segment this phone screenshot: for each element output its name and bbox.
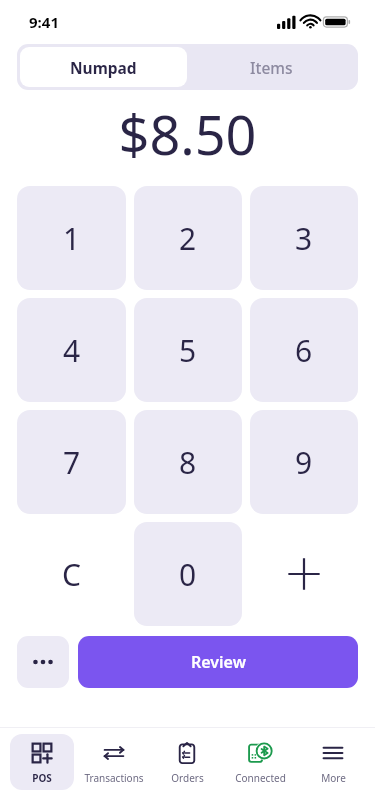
- button[interactable]: Transactions: [82, 734, 146, 790]
- staticText: POS: [32, 771, 52, 785]
- staticText: 7: [63, 442, 81, 483]
- button[interactable]: 3: [250, 186, 358, 290]
- staticText: Items: [250, 57, 293, 78]
- staticText: 9:41: [29, 12, 59, 32]
- staticText: 3: [295, 218, 313, 259]
- staticText: Connected: [235, 771, 286, 785]
- button[interactable]: 8: [134, 410, 242, 514]
- staticText: 4: [63, 330, 81, 371]
- button[interactable]: 6: [250, 298, 358, 402]
- button[interactable]: 2: [134, 186, 242, 290]
- button[interactable]: Add: [250, 522, 358, 626]
- staticText: 6: [295, 330, 313, 371]
- button[interactable]: Items: [187, 47, 355, 87]
- staticText: Transactions: [84, 771, 144, 785]
- button[interactable]: 9: [250, 410, 358, 514]
- staticText: Numpad: [70, 57, 137, 78]
- button[interactable]: 4: [17, 298, 126, 402]
- staticText: $8.50: [118, 97, 257, 171]
- button[interactable]: Numpad: [20, 47, 187, 87]
- staticText: More: [321, 771, 346, 785]
- button[interactable]: Orders: [155, 734, 219, 790]
- other: Add: [287, 557, 321, 591]
- button[interactable]: More: [301, 734, 365, 790]
- button[interactable]: Review: [78, 636, 358, 688]
- staticText: 8: [179, 442, 197, 483]
- staticText: 5: [179, 330, 197, 371]
- button[interactable]: 1: [17, 186, 126, 290]
- staticText: 1: [63, 218, 81, 259]
- button[interactable]: C: [17, 522, 126, 626]
- staticText: Orders: [171, 771, 204, 785]
- staticText: 9: [295, 442, 313, 483]
- staticText: Review: [191, 651, 246, 673]
- button[interactable]: 7: [17, 410, 126, 514]
- staticText: 2: [179, 218, 197, 259]
- button[interactable]: Connected: [228, 734, 292, 790]
- button[interactable]: More options: [17, 636, 69, 688]
- button[interactable]: 5: [134, 298, 242, 402]
- button[interactable]: POS: [10, 734, 74, 790]
- staticText: 0: [179, 554, 197, 595]
- button[interactable]: 0: [134, 522, 242, 626]
- staticText: C: [62, 554, 81, 595]
